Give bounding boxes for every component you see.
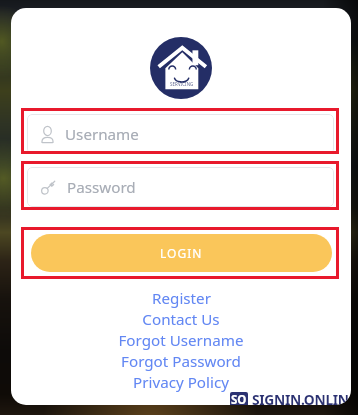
button[interactable]: Password <box>27 167 334 207</box>
staticText: Register <box>152 288 211 309</box>
staticText: SERVICING <box>170 81 194 87</box>
staticText: Privacy Policy <box>133 372 229 393</box>
staticText: Forgot Username <box>118 330 244 351</box>
staticText: LOGIN <box>160 245 203 261</box>
staticText: Contact Us <box>142 309 220 330</box>
button[interactable]: Privacy Policy <box>11 372 351 393</box>
button[interactable]: LOGIN <box>31 234 332 272</box>
staticText: Username <box>65 124 139 145</box>
staticText: Password <box>67 177 136 198</box>
staticText: SO <box>231 392 247 405</box>
button[interactable]: Contact Us <box>11 309 351 330</box>
button[interactable]: Forgot Username <box>11 330 351 351</box>
button[interactable]: Register <box>11 288 351 309</box>
staticText: Forgot Password <box>121 351 241 372</box>
staticText: SIGNIN.ONLINE <box>252 390 351 405</box>
button[interactable]: Username <box>27 114 334 154</box>
button[interactable]: Forgot Password <box>11 351 351 372</box>
